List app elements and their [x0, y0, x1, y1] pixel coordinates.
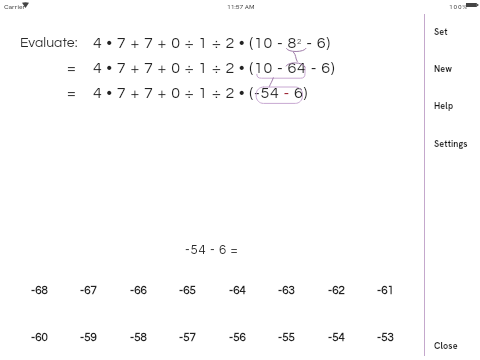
staticText: -64	[229, 285, 246, 297]
button[interactable]: -53	[363, 324, 407, 352]
staticText: -54	[328, 332, 345, 344]
button[interactable]: -60	[17, 324, 61, 352]
button[interactable]: -62	[314, 277, 358, 305]
button[interactable]: -55	[264, 324, 308, 352]
button[interactable]: New	[425, 60, 480, 78]
button[interactable]: Help	[425, 97, 480, 115]
button[interactable]: -54	[314, 324, 358, 352]
button[interactable]: -68	[17, 277, 61, 305]
staticText: -56	[229, 332, 246, 344]
staticText: -55	[278, 332, 295, 344]
staticText: -57	[179, 332, 196, 344]
button[interactable]: -61	[363, 277, 407, 305]
staticText: 4 • 7 + 7 + 0 ÷ 1 ÷ 2 • (-54 - 6)	[93, 85, 309, 101]
staticText: -54 - 6 =	[185, 243, 239, 256]
button[interactable]: -67	[66, 277, 110, 305]
button[interactable]: -57	[165, 324, 209, 352]
button[interactable]: -59	[66, 324, 110, 352]
staticText: -53	[377, 332, 394, 344]
staticText: -58	[130, 332, 147, 344]
button[interactable]: -65	[165, 277, 209, 305]
staticText: -63	[278, 285, 295, 297]
staticText: Help	[434, 100, 454, 112]
staticText: -60	[31, 332, 48, 344]
button[interactable]: -63	[264, 277, 308, 305]
staticText: -68	[31, 285, 48, 297]
staticText: =	[67, 85, 77, 101]
button[interactable]: -56	[215, 324, 259, 352]
staticText: -66	[130, 285, 147, 297]
staticText: -65	[179, 285, 196, 297]
staticText: 11:57 AM	[227, 2, 255, 10]
staticText: Close	[434, 340, 458, 352]
staticText: 4 • 7 + 7 + 0 ÷ 1 ÷ 2 • (10 - 64 - 6)	[93, 60, 336, 76]
staticText: =	[67, 60, 77, 76]
staticText: Carrier	[4, 2, 26, 10]
button[interactable]: Set	[425, 23, 480, 41]
button[interactable]: -54 - 6 =	[166, 236, 258, 262]
staticText: Settings	[434, 138, 468, 150]
staticText: 100%	[449, 2, 468, 10]
button[interactable]: -64	[215, 277, 259, 305]
staticText: -67	[80, 285, 97, 297]
staticText: New	[434, 63, 453, 75]
button[interactable]: Settings	[425, 135, 480, 153]
button[interactable]: -66	[116, 277, 160, 305]
staticText: -61	[377, 285, 394, 297]
staticText: Set	[434, 26, 448, 38]
staticText: Evaluate:	[20, 36, 78, 50]
button[interactable]: -58	[116, 324, 160, 352]
staticText: 4 • 7 + 7 + 0 ÷ 1 ÷ 2 • (10 - 82 - 6)	[93, 35, 331, 51]
button[interactable]: Close	[425, 337, 480, 355]
staticText: -59	[80, 332, 97, 344]
staticText: -62	[328, 285, 345, 297]
